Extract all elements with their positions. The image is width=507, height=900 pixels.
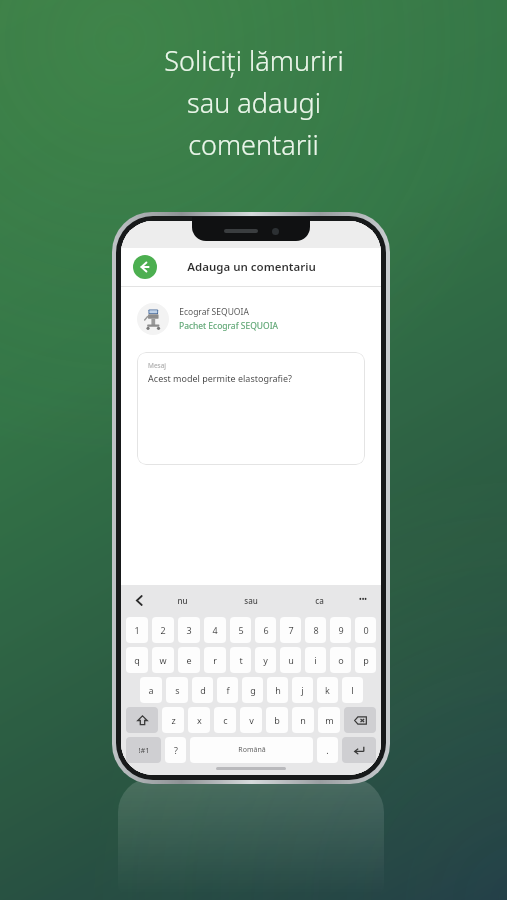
- button[interactable]: 8: [305, 617, 326, 643]
- staticText: Soliciți lămuriri: [164, 42, 344, 79]
- button[interactable]: Română: [190, 737, 313, 763]
- staticText: ?: [174, 744, 178, 756]
- button[interactable]: i: [305, 647, 326, 673]
- staticText: comentarii: [188, 126, 319, 163]
- button[interactable]: Enter: [342, 737, 376, 763]
- staticText: i: [314, 654, 317, 666]
- staticText: Acest model permite elastografie?: [148, 372, 292, 384]
- button[interactable]: 7: [280, 617, 301, 643]
- staticText: Mesaj: [148, 361, 166, 370]
- staticText: 2: [160, 624, 166, 636]
- button[interactable]: o: [330, 647, 351, 673]
- button[interactable]: d: [192, 677, 213, 703]
- staticText: 5: [238, 624, 244, 636]
- button[interactable]: 2: [152, 617, 174, 643]
- button[interactable]: m: [318, 707, 340, 733]
- staticText: 0: [363, 624, 369, 636]
- staticText: l: [351, 684, 354, 696]
- button[interactable]: sau: [216, 585, 285, 615]
- button[interactable]: j: [292, 677, 313, 703]
- staticText: Română: [238, 745, 266, 755]
- staticText: .: [326, 744, 329, 756]
- staticText: Ecograf SEQUOIA: [179, 306, 249, 318]
- button[interactable]: 0: [355, 617, 376, 643]
- button[interactable]: 3: [178, 617, 200, 643]
- button[interactable]: 5: [230, 617, 251, 643]
- staticText: d: [200, 684, 206, 696]
- staticText: k: [325, 684, 330, 696]
- staticText: Pachet Ecograf SEQUOIA: [179, 320, 278, 332]
- button[interactable]: Backspace: [344, 707, 376, 733]
- staticText: s: [175, 684, 180, 696]
- staticText: sau adaugi: [187, 84, 321, 121]
- button[interactable]: l: [342, 677, 363, 703]
- button[interactable]: s: [166, 677, 188, 703]
- staticText: w: [159, 654, 167, 666]
- staticText: 4: [212, 624, 218, 636]
- button[interactable]: Shift: [126, 707, 158, 733]
- staticText: ca: [315, 595, 324, 606]
- staticText: m: [325, 714, 334, 726]
- staticText: •••: [359, 595, 367, 605]
- button[interactable]: u: [280, 647, 301, 673]
- staticText: t: [239, 654, 243, 666]
- button[interactable]: 4: [204, 617, 226, 643]
- staticText: p: [363, 654, 369, 666]
- staticText: nu: [177, 595, 188, 606]
- button[interactable]: z: [162, 707, 184, 733]
- staticText: v: [249, 714, 254, 726]
- button[interactable]: e: [178, 647, 200, 673]
- button[interactable]: n: [292, 707, 314, 733]
- staticText: q: [134, 654, 140, 666]
- button[interactable]: 6: [255, 617, 276, 643]
- button[interactable]: x: [188, 707, 210, 733]
- staticText: e: [186, 654, 192, 666]
- staticText: 7: [288, 624, 294, 636]
- staticText: b: [274, 714, 280, 726]
- button[interactable]: k: [317, 677, 338, 703]
- staticText: y: [263, 654, 268, 666]
- button[interactable]: g: [242, 677, 263, 703]
- button[interactable]: p: [355, 647, 376, 673]
- staticText: x: [197, 714, 202, 726]
- button[interactable]: !#1: [126, 737, 161, 763]
- button[interactable]: b: [266, 707, 288, 733]
- staticText: f: [226, 684, 230, 696]
- staticText: r: [213, 654, 217, 666]
- button[interactable]: More suggestions: [354, 591, 372, 609]
- button[interactable]: q: [126, 647, 148, 673]
- button[interactable]: .: [317, 737, 338, 763]
- staticText: n: [300, 714, 306, 726]
- button[interactable]: Mesaj: [137, 352, 365, 465]
- staticText: h: [275, 684, 281, 696]
- staticText: 3: [186, 624, 192, 636]
- staticText: u: [288, 654, 294, 666]
- staticText: z: [171, 714, 176, 726]
- staticText: 1: [134, 624, 140, 636]
- button[interactable]: t: [230, 647, 251, 673]
- button[interactable]: f: [217, 677, 238, 703]
- button[interactable]: Ecograf SEQUOIA: [137, 303, 369, 335]
- button[interactable]: Back: [133, 255, 157, 279]
- button[interactable]: c: [214, 707, 236, 733]
- button[interactable]: ca: [285, 585, 354, 615]
- staticText: sau: [244, 595, 258, 606]
- staticText: !#1: [138, 745, 150, 755]
- button[interactable]: 1: [126, 617, 148, 643]
- button[interactable]: nu: [148, 585, 216, 615]
- button[interactable]: w: [152, 647, 174, 673]
- button[interactable]: 9: [330, 617, 351, 643]
- staticText: 8: [313, 624, 319, 636]
- button[interactable]: ?: [165, 737, 186, 763]
- button[interactable]: Previous suggestions: [130, 591, 148, 609]
- button[interactable]: v: [240, 707, 262, 733]
- button[interactable]: a: [140, 677, 162, 703]
- button[interactable]: h: [267, 677, 288, 703]
- staticText: c: [223, 714, 228, 726]
- button[interactable]: y: [255, 647, 276, 673]
- staticText: j: [301, 684, 304, 696]
- staticText: 9: [338, 624, 344, 636]
- staticText: g: [250, 684, 256, 696]
- button[interactable]: r: [204, 647, 226, 673]
- staticText: 6: [263, 624, 269, 636]
